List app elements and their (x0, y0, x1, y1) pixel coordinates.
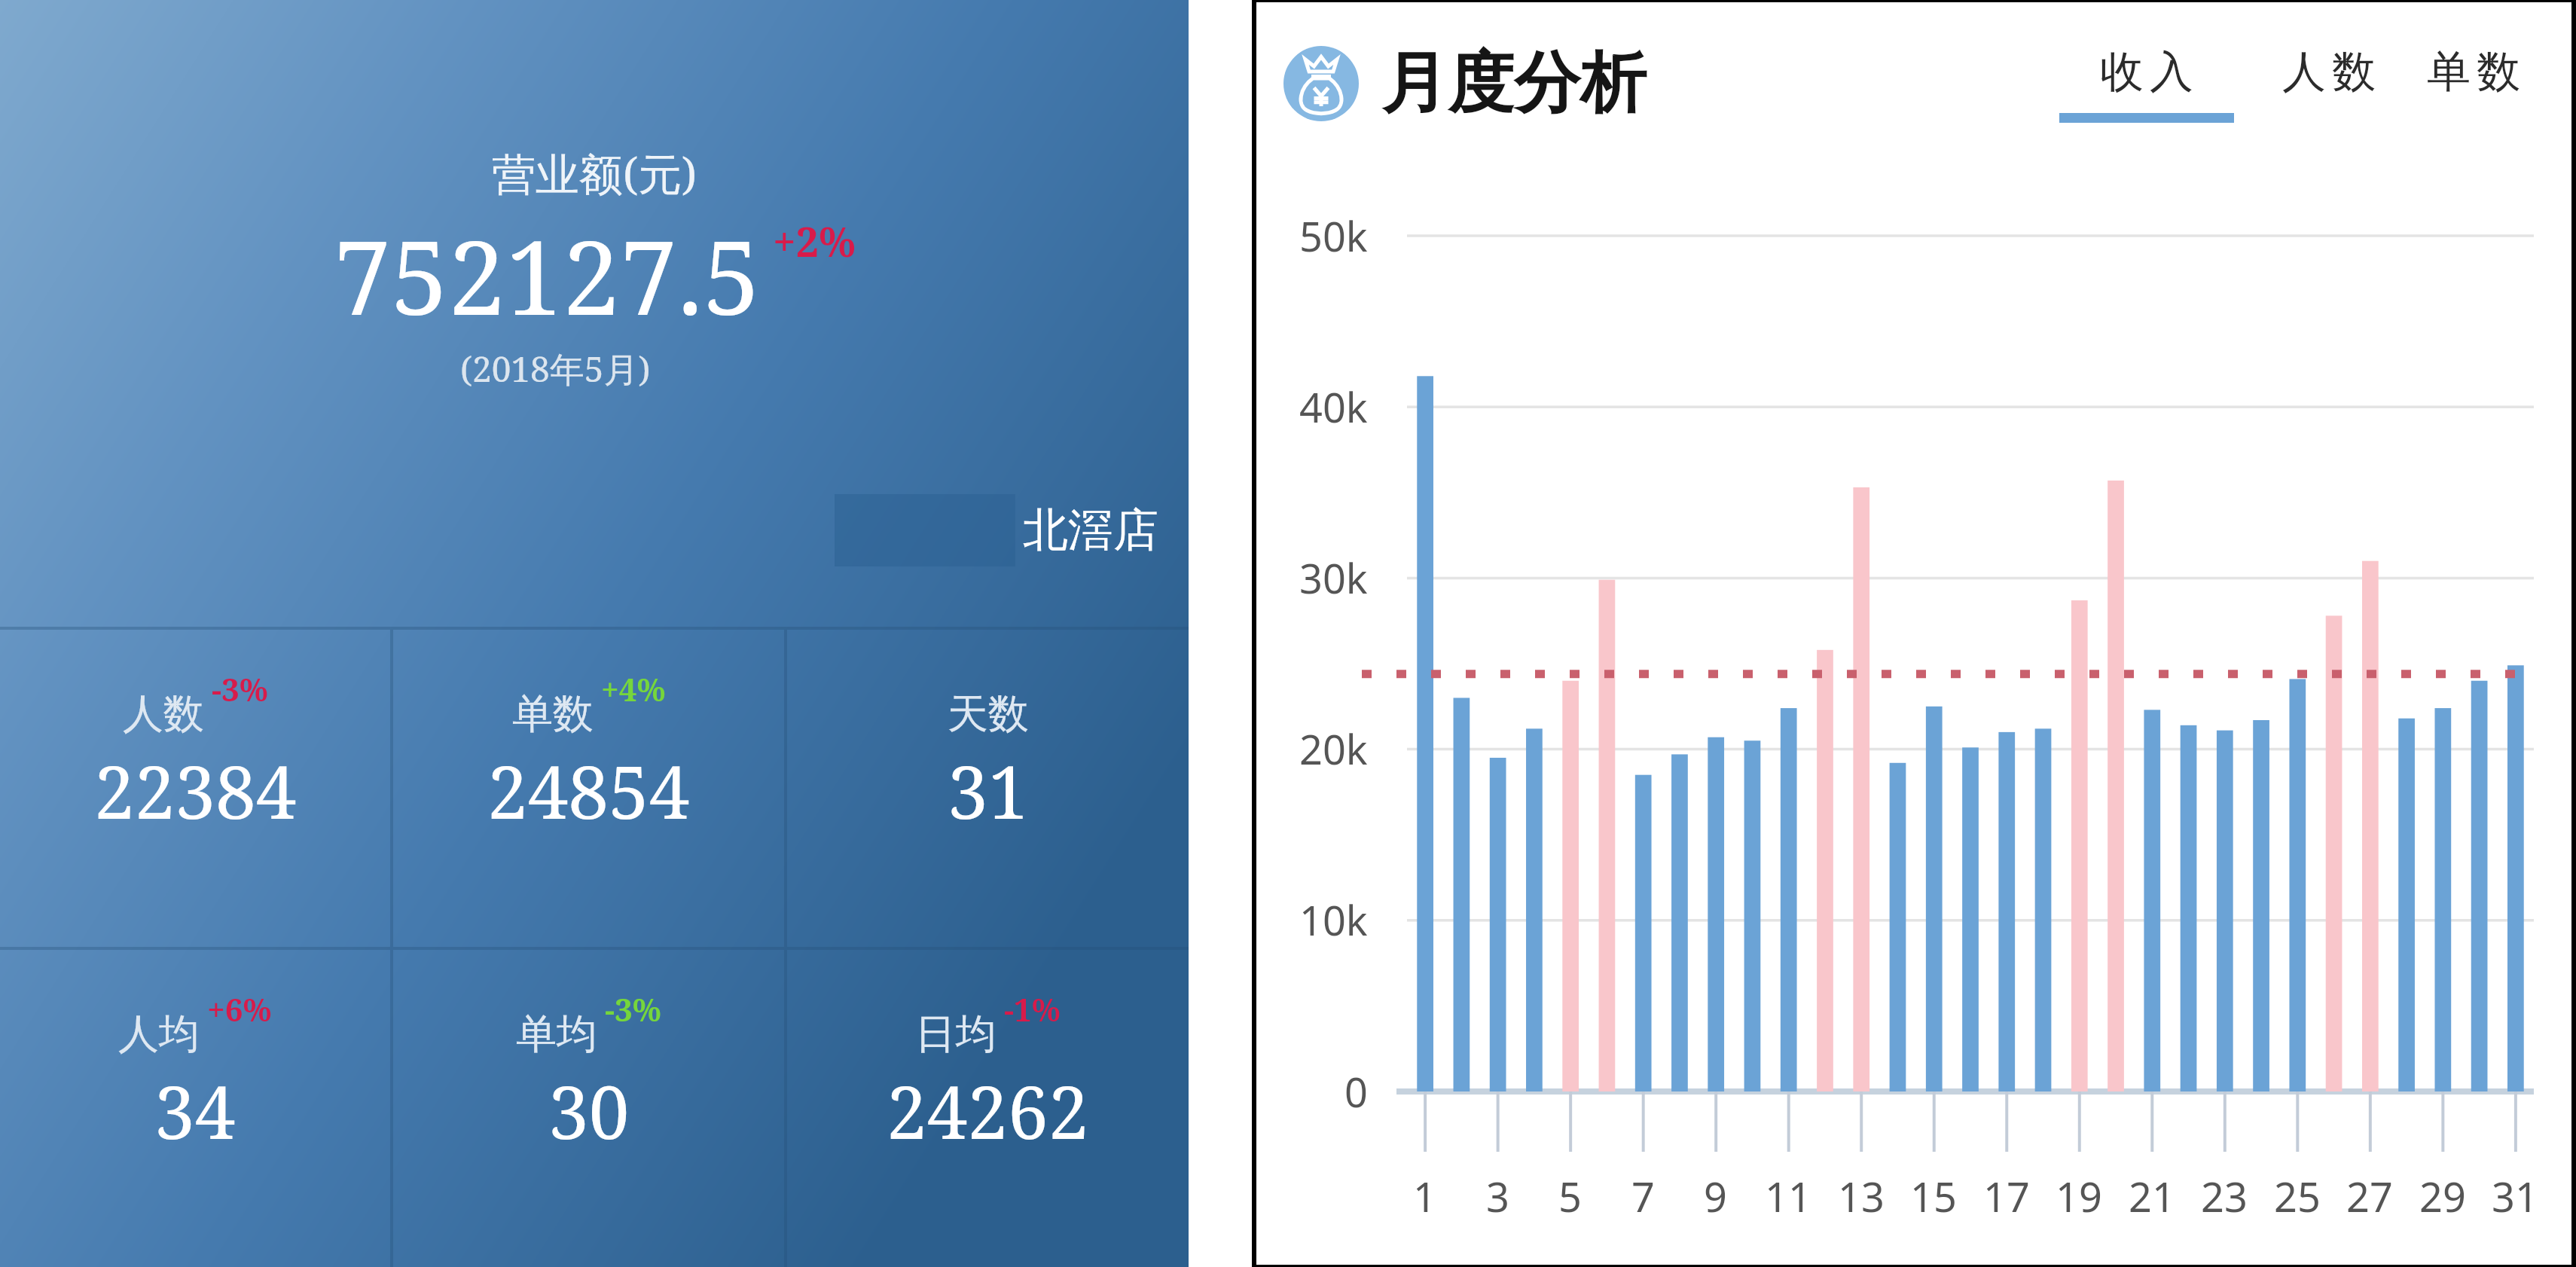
button[interactable]: 人均 (0, 950, 390, 1267)
staticText: 22384 (94, 741, 297, 840)
staticText: 人数 (123, 688, 204, 740)
staticText: 10k (1299, 892, 1368, 948)
staticText: (2018年5月) (460, 345, 651, 392)
staticText: +6% (207, 988, 272, 1030)
button[interactable]: 人数 (2273, 44, 2385, 123)
staticText: 24854 (487, 741, 690, 840)
staticText: 27 (2346, 1168, 2393, 1224)
staticText: 人数 (2279, 44, 2379, 99)
staticText: 24262 (887, 1061, 1089, 1160)
staticText: 5 (1558, 1168, 1582, 1224)
staticText: -3% (605, 988, 661, 1030)
staticText: 人均 (118, 1009, 200, 1060)
staticText: 收入 (2097, 44, 2196, 99)
staticText: +4% (601, 667, 666, 710)
button[interactable]: 北滘店 (835, 494, 1158, 566)
staticText: 752127.5 (334, 206, 761, 345)
staticText: 营业额(元) (492, 143, 697, 203)
staticText: 50k (1299, 208, 1368, 264)
button[interactable]: 单数 (393, 630, 784, 947)
staticText: -1% (1004, 988, 1061, 1030)
staticText: 3 (1486, 1168, 1509, 1224)
staticText: 21 (2129, 1168, 2175, 1224)
staticText: 0 (1344, 1064, 1368, 1119)
button[interactable]: Revenue (1283, 46, 1359, 121)
staticText: 月度分析 (1381, 41, 1647, 125)
staticText: 北滘店 (1023, 502, 1158, 559)
staticText: 34 (154, 1061, 236, 1160)
staticText: 天数 (948, 688, 1029, 740)
staticText: 单均 (516, 1009, 597, 1060)
button[interactable]: 天数 (787, 630, 1189, 947)
staticText: 30k (1299, 550, 1368, 606)
staticText: +2% (773, 213, 856, 269)
staticText: 25 (2274, 1168, 2321, 1224)
staticText: 40k (1299, 379, 1368, 435)
staticText: 7 (1631, 1168, 1655, 1224)
staticText: 13 (1838, 1168, 1885, 1224)
button[interactable]: 单数 (2418, 44, 2529, 123)
button[interactable]: 日均 (787, 950, 1189, 1267)
staticText: 31 (2492, 1168, 2538, 1224)
staticText: 31 (948, 741, 1029, 840)
staticText: 1 (1413, 1168, 1436, 1224)
button[interactable]: 人数 (0, 630, 390, 947)
staticText: 11 (1765, 1168, 1811, 1224)
staticText: 20k (1299, 721, 1368, 777)
staticText: 17 (1983, 1168, 2030, 1224)
staticText: 19 (2056, 1168, 2102, 1224)
staticText: 15 (1910, 1168, 1957, 1224)
button[interactable]: 收入 (2053, 44, 2240, 123)
button[interactable]: 单均 (393, 950, 784, 1267)
button[interactable]: Revenue (1283, 41, 1647, 125)
staticText: 30 (548, 1061, 630, 1160)
staticText: 9 (1704, 1168, 1727, 1224)
staticText: 单数 (2424, 44, 2523, 99)
staticText: 单数 (512, 688, 594, 740)
staticText: 日均 (915, 1009, 997, 1060)
staticText: 23 (2201, 1168, 2248, 1224)
staticText: 29 (2419, 1168, 2466, 1224)
staticText: -3% (212, 667, 268, 710)
